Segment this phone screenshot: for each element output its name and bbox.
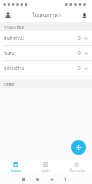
staticText: ในดิน: [4, 50, 78, 56]
staticText: ใบเสนอราคา: [32, 11, 61, 19]
staticText: บริษัท: [4, 81, 14, 87]
staticText: ลูกค้า: [42, 168, 50, 173]
button[interactable]: Account: [2, 9, 14, 21]
staticText: 0: [78, 35, 81, 41]
staticText: รายละเอียด: [4, 24, 25, 30]
button[interactable]: More options: [78, 9, 90, 21]
button[interactable]: ลูกค้า: [30, 160, 61, 174]
staticText: อุปกรณ์ร้าน: [4, 65, 78, 71]
staticText: 0: [78, 50, 81, 56]
staticText: สินค้าทั่วไป: [4, 35, 78, 41]
button[interactable]: ใบเสนอ: [0, 160, 30, 174]
staticText: ใบเสนอ: [10, 168, 21, 173]
button[interactable]: ตั้งค่าระบบ: [61, 160, 92, 174]
button[interactable]: อุปกรณ์ร้าน: [0, 61, 92, 75]
button[interactable]: Add: [71, 140, 86, 155]
button[interactable]: สินค้าทั่วไป: [0, 31, 92, 45]
staticText: ตั้งค่าระบบ: [69, 168, 85, 173]
staticText: 0: [78, 65, 81, 71]
button[interactable]: ในดิน: [0, 46, 92, 60]
